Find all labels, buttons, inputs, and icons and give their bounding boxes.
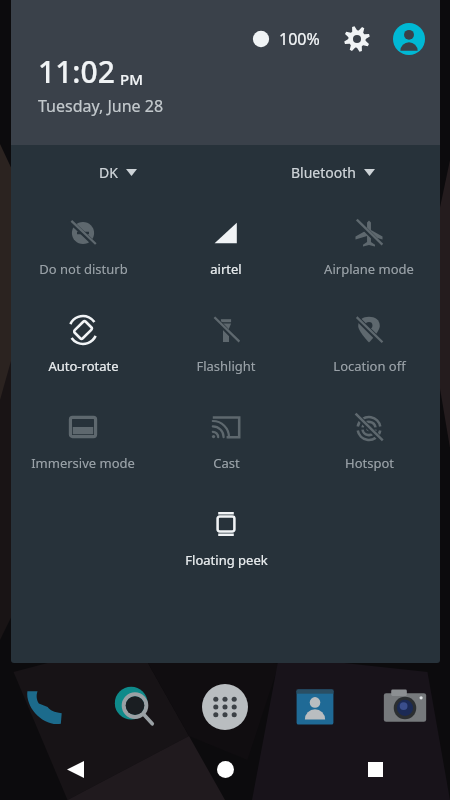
staticText: Flashlight xyxy=(196,357,256,375)
staticText: Immersive mode xyxy=(31,454,135,472)
button[interactable]: Camera xyxy=(380,682,430,732)
staticText: Auto-rotate xyxy=(48,357,119,375)
staticText: airtel xyxy=(210,260,242,278)
button[interactable]: Floating peek xyxy=(156,507,296,571)
button[interactable]: All apps xyxy=(200,682,250,732)
staticText: Cast xyxy=(213,454,240,472)
staticText: Bluetooth xyxy=(291,163,356,182)
staticText: DK xyxy=(99,163,118,182)
staticText: Do not disturb xyxy=(39,260,128,278)
button[interactable]: DK xyxy=(93,159,143,186)
staticText: 100% xyxy=(279,28,320,50)
button[interactable]: Hotspot xyxy=(299,410,439,474)
button[interactable]: User profile xyxy=(392,22,426,56)
button[interactable]: Back xyxy=(51,745,99,793)
staticText: Hotspot xyxy=(345,454,394,472)
button[interactable]: Immersive mode xyxy=(13,410,153,474)
button[interactable]: Phone xyxy=(20,682,70,732)
button[interactable]: Settings xyxy=(340,22,374,56)
button[interactable]: Bluetooth xyxy=(285,159,381,186)
staticText: 11:02 xyxy=(38,51,115,92)
button[interactable]: Search xyxy=(110,682,160,732)
button[interactable]: Do not disturb xyxy=(13,216,153,280)
button[interactable]: Airplane mode xyxy=(299,216,439,280)
staticText: Airplane mode xyxy=(324,260,414,278)
staticText: Tuesday, June 28 xyxy=(38,95,164,117)
button[interactable]: Recent apps xyxy=(351,745,399,793)
staticText: Location off xyxy=(333,357,406,375)
button[interactable]: airtel xyxy=(156,216,296,280)
button[interactable]: Flashlight xyxy=(156,313,296,377)
button[interactable]: Contacts xyxy=(290,682,340,732)
button[interactable]: Home xyxy=(201,745,249,793)
staticText: Floating peek xyxy=(185,551,268,569)
button[interactable]: Auto-rotate xyxy=(13,313,153,377)
button[interactable]: Cast xyxy=(156,410,296,474)
staticText: PM xyxy=(120,69,143,89)
button[interactable]: Location off xyxy=(299,313,439,377)
